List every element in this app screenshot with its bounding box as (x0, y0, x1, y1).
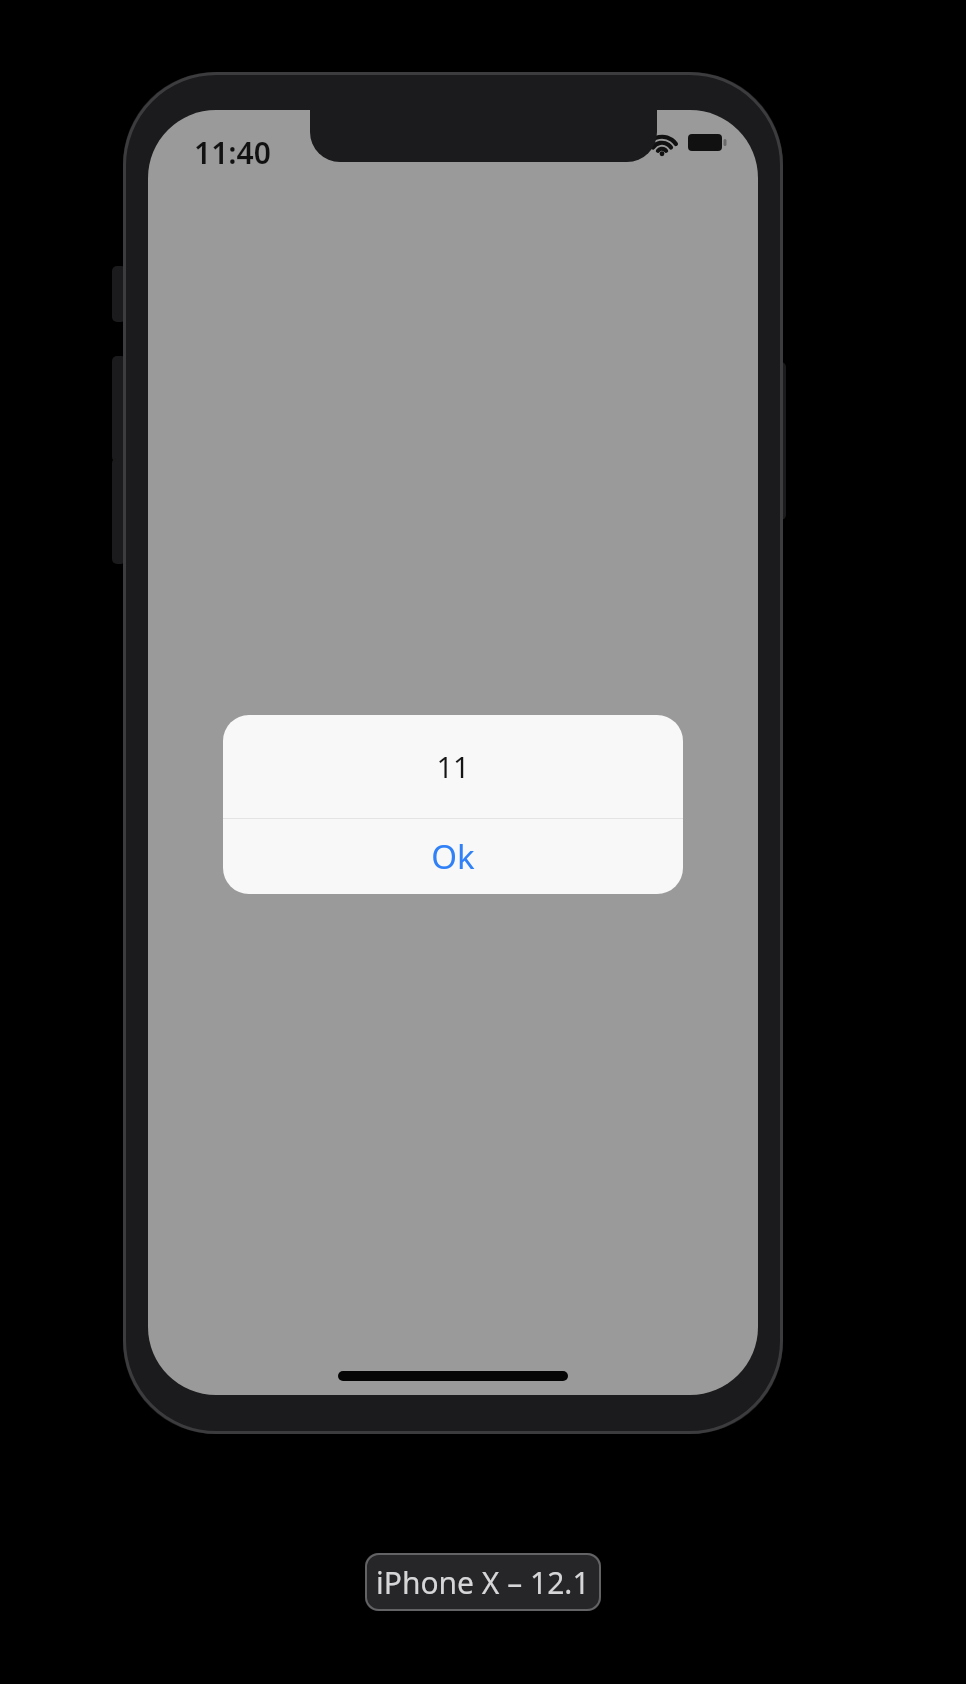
button[interactable]: iPhone X – 12.1 (365, 1553, 601, 1611)
staticText: 11:40 (194, 132, 271, 173)
staticText: 11 (436, 747, 470, 786)
staticText: iPhone X – 12.1 (376, 1562, 590, 1603)
button[interactable]: Ok (223, 819, 683, 894)
other: Home indicator (338, 1371, 568, 1381)
staticText: Ok (431, 834, 475, 879)
